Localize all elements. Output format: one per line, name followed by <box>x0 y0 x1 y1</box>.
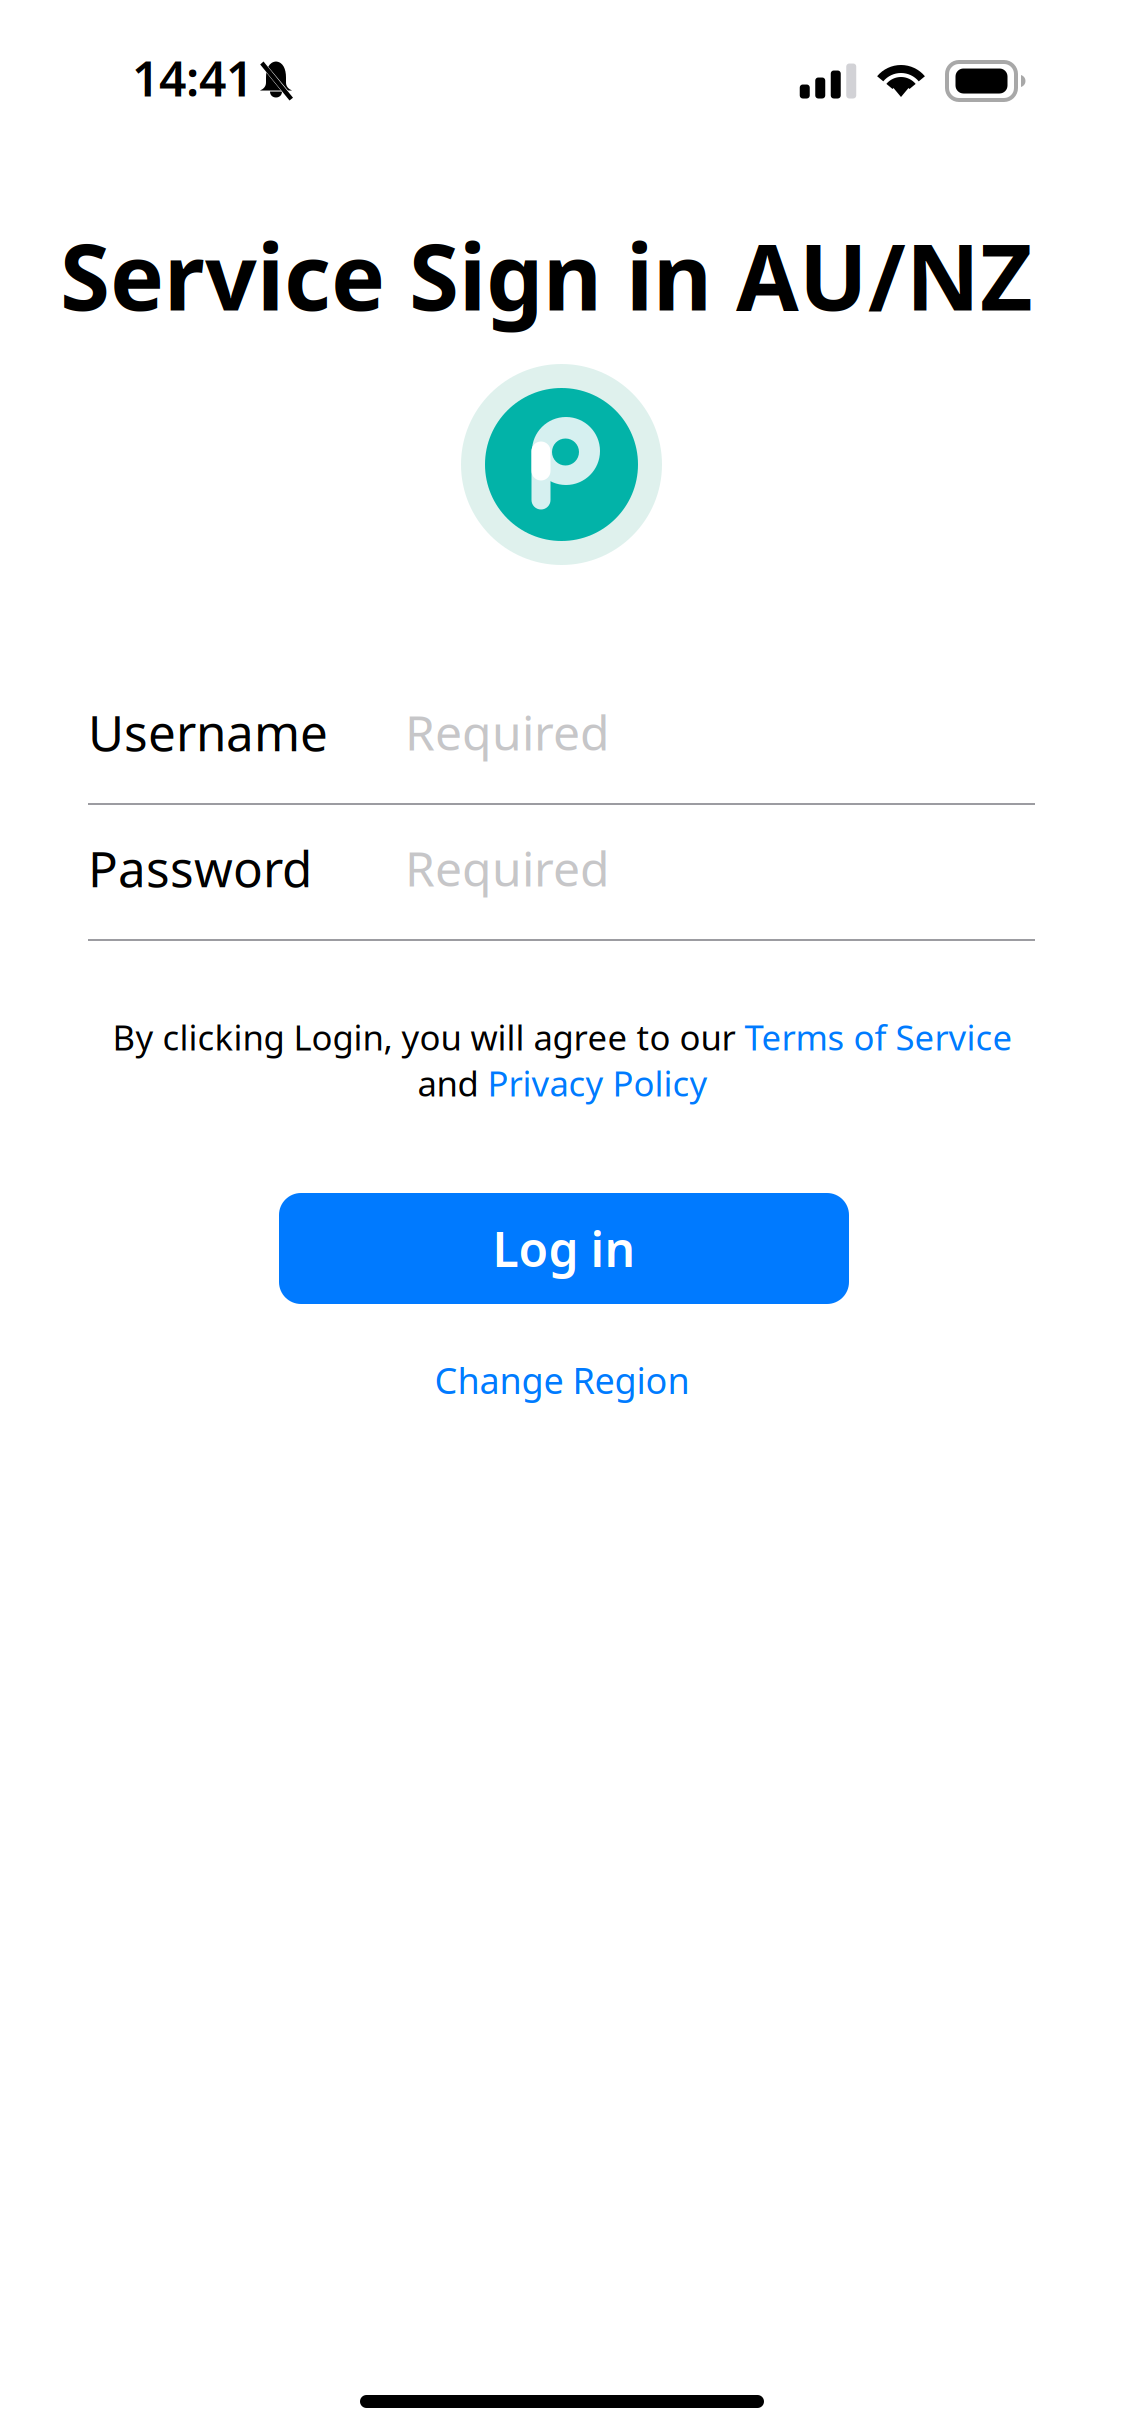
staticText: Password <box>88 835 312 901</box>
staticText: 14:41 <box>132 46 253 110</box>
staticText: and <box>417 1060 487 1106</box>
staticText: Username <box>88 699 328 765</box>
button[interactable]: Username <box>88 669 1035 805</box>
staticText: Terms of Service <box>744 1014 1012 1060</box>
staticText: Required <box>405 700 610 764</box>
staticText: Privacy Policy <box>487 1060 707 1106</box>
staticText: Log in <box>492 1217 635 1280</box>
button[interactable]: Privacy Policy <box>487 1060 707 1106</box>
staticText: Change Region <box>434 1356 689 1404</box>
staticText: By clicking Login, you will agree to our <box>112 1014 744 1060</box>
staticText: Service Sign in AU/NZ <box>60 215 1032 335</box>
staticText: Required <box>405 836 610 900</box>
button[interactable]: Change Region <box>412 1350 712 1410</box>
button[interactable]: Password <box>88 805 1035 941</box>
button[interactable]: Terms of Service <box>744 1014 1012 1060</box>
button[interactable]: Log in <box>279 1193 849 1304</box>
